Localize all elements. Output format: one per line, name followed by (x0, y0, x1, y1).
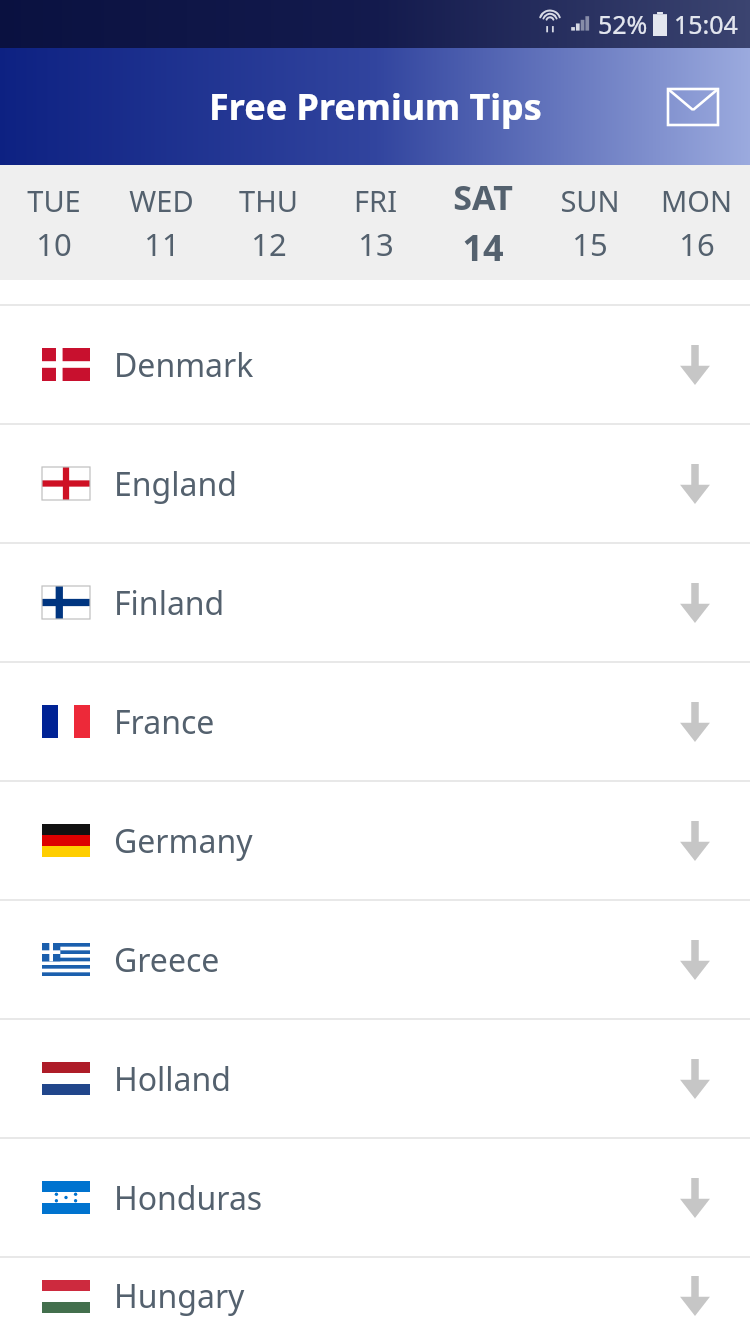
button[interactable]: Expand Greece (640, 901, 750, 1018)
staticText: 13 (358, 223, 394, 265)
staticText: Holland (114, 1057, 231, 1101)
staticText: THU (239, 181, 298, 220)
button[interactable]: Greece (0, 901, 750, 1018)
button[interactable]: Expand Germany (640, 782, 750, 899)
button[interactable]: Denmark (0, 306, 750, 423)
button[interactable]: Expand Holland (640, 1020, 750, 1137)
staticText: 10 (36, 223, 72, 265)
staticText: England (114, 462, 237, 506)
button[interactable]: Expand England (640, 425, 750, 542)
button[interactable]: THU (215, 181, 322, 265)
staticText: France (114, 700, 215, 744)
button[interactable]: Expand Honduras (640, 1139, 750, 1256)
staticText: Greece (114, 938, 220, 982)
staticText: 16 (679, 223, 715, 265)
staticText: 11 (144, 223, 180, 265)
staticText: 12 (251, 223, 287, 265)
staticText: WED (129, 181, 194, 220)
staticText: Honduras (114, 1176, 263, 1220)
button[interactable]: WED (108, 181, 215, 265)
staticText: 15 (572, 223, 608, 265)
button[interactable]: Expand Finland (640, 544, 750, 661)
button[interactable]: FRI (322, 181, 429, 265)
button[interactable]: SUN (536, 181, 643, 265)
staticText: Hungary (114, 1274, 245, 1318)
staticText: Free Premium Tips (209, 82, 542, 131)
staticText: Finland (114, 581, 225, 625)
staticText: SUN (560, 181, 620, 220)
button[interactable]: TUE (0, 181, 108, 265)
button[interactable]: SAT (429, 174, 536, 272)
button[interactable]: Germany (0, 782, 750, 899)
staticText: SAT (453, 174, 513, 220)
button[interactable]: Expand Hungary (640, 1258, 750, 1334)
staticText: 15:04 (674, 7, 738, 41)
staticText: 14 (462, 223, 504, 272)
staticText: Germany (114, 819, 253, 863)
button[interactable]: MON (643, 181, 750, 265)
button[interactable]: France (0, 663, 750, 780)
button[interactable]: Holland (0, 1020, 750, 1137)
staticText: MON (661, 181, 732, 220)
staticText: FRI (354, 181, 397, 220)
button[interactable]: Expand France (640, 663, 750, 780)
staticText: 52% (598, 7, 648, 41)
button[interactable]: Finland (0, 544, 750, 661)
button[interactable]: Hungary (0, 1258, 750, 1334)
button[interactable]: Messages (662, 76, 724, 138)
button[interactable]: Expand Denmark (640, 306, 750, 423)
button[interactable]: Honduras (0, 1139, 750, 1256)
button[interactable]: England (0, 425, 750, 542)
staticText: TUE (27, 181, 81, 220)
staticText: Denmark (114, 343, 254, 387)
